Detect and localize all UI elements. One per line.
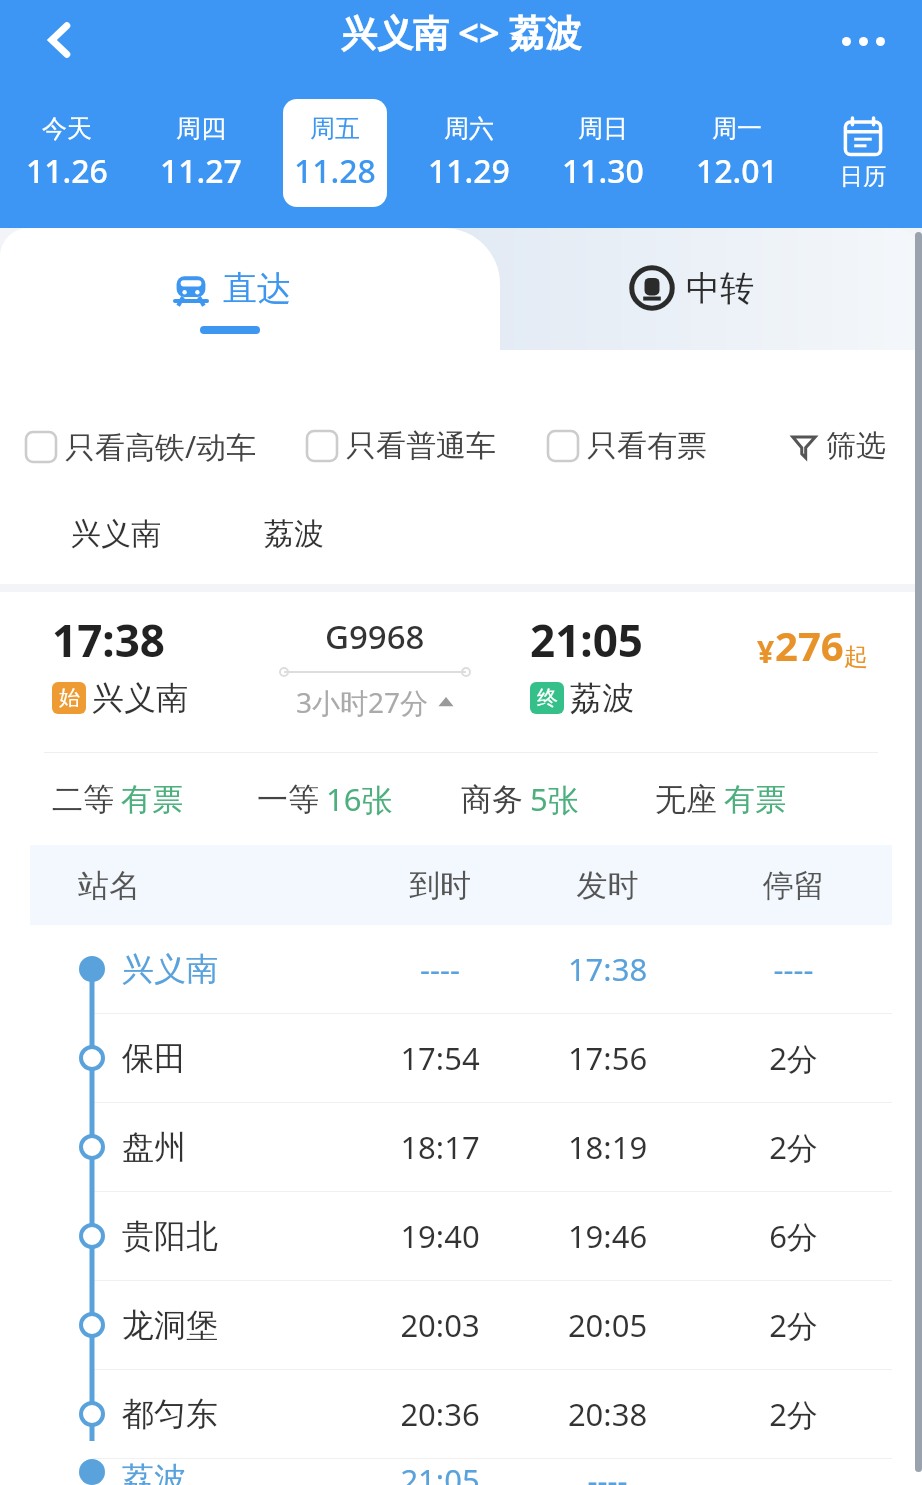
staticText: 今天 (42, 113, 92, 144)
staticText: G9968 (325, 614, 425, 659)
staticText: 只看有票 (587, 427, 707, 465)
staticText: 兴义南 (122, 949, 218, 989)
button[interactable]: 荔波 (224, 495, 364, 573)
staticText: 19:46 (520, 1215, 695, 1257)
staticText: 直达 (223, 267, 291, 310)
staticText: 兴义南 (92, 678, 188, 718)
staticText: 11.29 (428, 149, 510, 193)
staticText: 276 (775, 618, 844, 672)
button[interactable]: 中转 (461, 228, 922, 348)
staticText: 11.28 (294, 149, 376, 193)
staticText: 6分 (695, 1215, 892, 1257)
staticText: ---- (520, 1459, 695, 1485)
staticText: 龙洞堡 (122, 1305, 218, 1345)
staticText: 16张 (326, 778, 393, 820)
staticText: 商务 (461, 780, 523, 819)
staticText: 中转 (686, 267, 754, 310)
button[interactable]: Back (22, 2, 98, 78)
staticText: 17:54 (360, 1037, 520, 1079)
staticText: 筛选 (826, 427, 886, 465)
button[interactable]: 只看高铁/动车 (26, 426, 257, 467)
staticText: 荔波 (570, 678, 634, 718)
button[interactable]: 只看有票 (548, 427, 707, 465)
button[interactable]: 今天 (0, 78, 134, 228)
staticText: 周六 (444, 113, 494, 144)
staticText: 起 (844, 642, 868, 672)
button[interactable]: 3小时27分 (296, 683, 455, 721)
staticText: 保田 (122, 1038, 186, 1078)
staticText: 盘州 (122, 1127, 186, 1167)
staticText: ---- (695, 948, 892, 990)
staticText: 21:05 (360, 1459, 520, 1485)
staticText: 12.01 (696, 149, 778, 193)
button[interactable]: 日历 (804, 78, 922, 228)
button[interactable]: 周日 (536, 78, 670, 228)
staticText: 停留 (695, 866, 892, 905)
button[interactable]: 直达 (0, 228, 461, 348)
staticText: 18:17 (360, 1126, 520, 1168)
button[interactable]: 盘州 (30, 1103, 892, 1191)
staticText: 周四 (176, 113, 226, 144)
button[interactable]: 兴义南 (30, 925, 892, 1013)
staticText: 无座 (655, 780, 717, 819)
staticText: 都匀东 (122, 1394, 218, 1434)
staticText: 2分 (695, 1393, 892, 1435)
staticText: 17:56 (520, 1037, 695, 1079)
staticText: 2分 (695, 1304, 892, 1346)
staticText: 周日 (578, 113, 628, 144)
staticText: 贵阳北 (122, 1216, 218, 1256)
staticText: 有票 (724, 780, 786, 819)
staticText: 2分 (695, 1037, 892, 1079)
button[interactable]: 筛选 (790, 427, 886, 465)
staticText: 3小时27分 (296, 683, 429, 721)
button[interactable]: 保田 (30, 1014, 892, 1102)
button[interactable]: 周一 (670, 78, 804, 228)
staticText: 始 (59, 685, 80, 711)
staticText: 有票 (121, 780, 183, 819)
staticText: ¥ (757, 631, 775, 672)
button[interactable]: 只看普通车 (307, 427, 496, 465)
button[interactable]: 贵阳北 (30, 1192, 892, 1280)
staticText: 20:05 (520, 1304, 695, 1346)
staticText: 兴义南 <> 荔波 (341, 8, 581, 57)
staticText: 11.30 (562, 149, 644, 193)
staticText: 20:36 (360, 1393, 520, 1435)
staticText: 只看普通车 (346, 427, 496, 465)
staticText: ---- (360, 948, 520, 990)
staticText: 21:05 (530, 610, 644, 670)
staticText: 兴义南 (71, 515, 161, 553)
staticText: 18:19 (520, 1126, 695, 1168)
staticText: 2分 (695, 1126, 892, 1168)
button[interactable]: 荔波 (30, 1459, 892, 1485)
button[interactable]: 兴义南 (30, 495, 202, 573)
button[interactable]: 周六 (402, 78, 536, 228)
staticText: 周一 (712, 113, 762, 144)
staticText: 20:38 (520, 1393, 695, 1435)
staticText: 荔波 (264, 515, 324, 553)
button[interactable]: 周五 (268, 78, 402, 228)
staticText: 5张 (530, 778, 579, 820)
staticText: 到时 (360, 866, 520, 905)
staticText: 发时 (520, 866, 695, 905)
staticText: 周五 (310, 113, 360, 144)
button[interactable]: 周四 (134, 78, 268, 228)
staticText: 11.27 (160, 149, 242, 193)
staticText: 站名 (78, 866, 140, 905)
staticText: 二等 (52, 780, 114, 819)
button[interactable]: 都匀东 (30, 1370, 892, 1458)
button[interactable]: More options (828, 6, 898, 76)
staticText: 19:40 (360, 1215, 520, 1257)
staticText: 一等 (257, 780, 319, 819)
staticText: 11.26 (26, 149, 108, 193)
staticText: 17:38 (52, 610, 166, 670)
button[interactable]: 龙洞堡 (30, 1281, 892, 1369)
staticText: 荔波 (122, 1459, 186, 1485)
staticText: 只看高铁/动车 (65, 426, 257, 467)
staticText: 17:38 (520, 948, 695, 990)
staticText: 日历 (840, 162, 886, 191)
staticText: 20:03 (360, 1304, 520, 1346)
staticText: 终 (537, 685, 558, 711)
